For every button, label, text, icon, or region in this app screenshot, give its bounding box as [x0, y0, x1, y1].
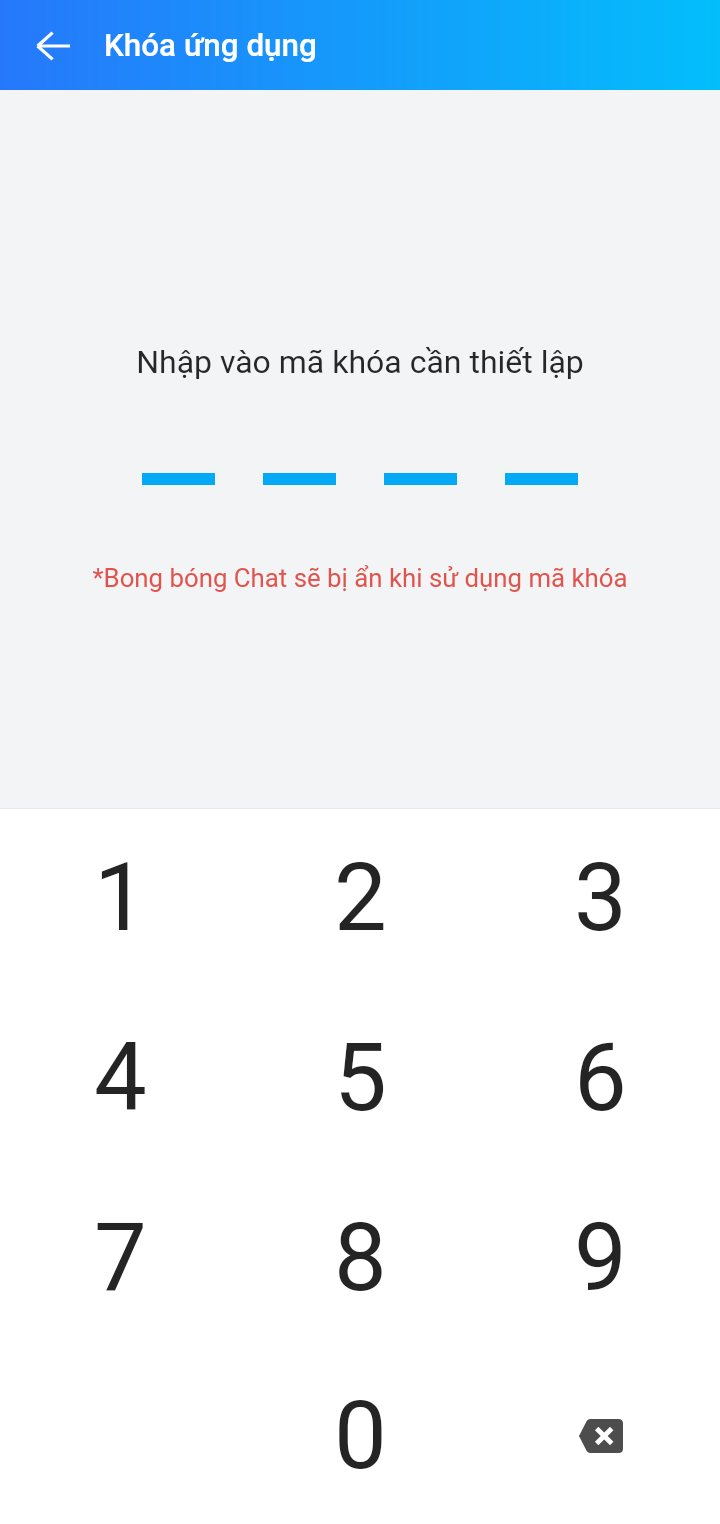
staticText: 6 — [574, 1023, 627, 1133]
staticText: 8 — [334, 1203, 387, 1313]
button[interactable]: 2 — [240, 808, 480, 988]
button[interactable]: 0 — [240, 1348, 480, 1523]
staticText: 2 — [334, 843, 387, 953]
staticText: 1 — [94, 843, 147, 953]
button[interactable]: Delete — [480, 1348, 720, 1523]
staticText: 0 — [334, 1381, 387, 1491]
staticText: Nhập vào mã khóa cần thiết lập — [136, 343, 584, 381]
staticText: *Bong bóng Chat sẽ bị ẩn khi sử dụng mã … — [92, 563, 628, 593]
staticText: 7 — [94, 1203, 147, 1313]
staticText: 4 — [94, 1023, 147, 1133]
button[interactable]: 5 — [240, 988, 480, 1168]
button[interactable]: 3 — [480, 808, 720, 988]
staticText: 3 — [574, 843, 627, 953]
button[interactable]: 6 — [480, 988, 720, 1168]
staticText: Khóa ứng dụng — [104, 27, 317, 64]
button[interactable]: 7 — [0, 1168, 240, 1348]
button[interactable]: Back — [16, 9, 88, 81]
button[interactable]: 4 — [0, 988, 240, 1168]
button[interactable]: 9 — [480, 1168, 720, 1348]
button[interactable]: 1 — [0, 808, 240, 988]
staticText: 5 — [334, 1023, 387, 1133]
staticText: 9 — [574, 1203, 627, 1313]
button[interactable]: 8 — [240, 1168, 480, 1348]
